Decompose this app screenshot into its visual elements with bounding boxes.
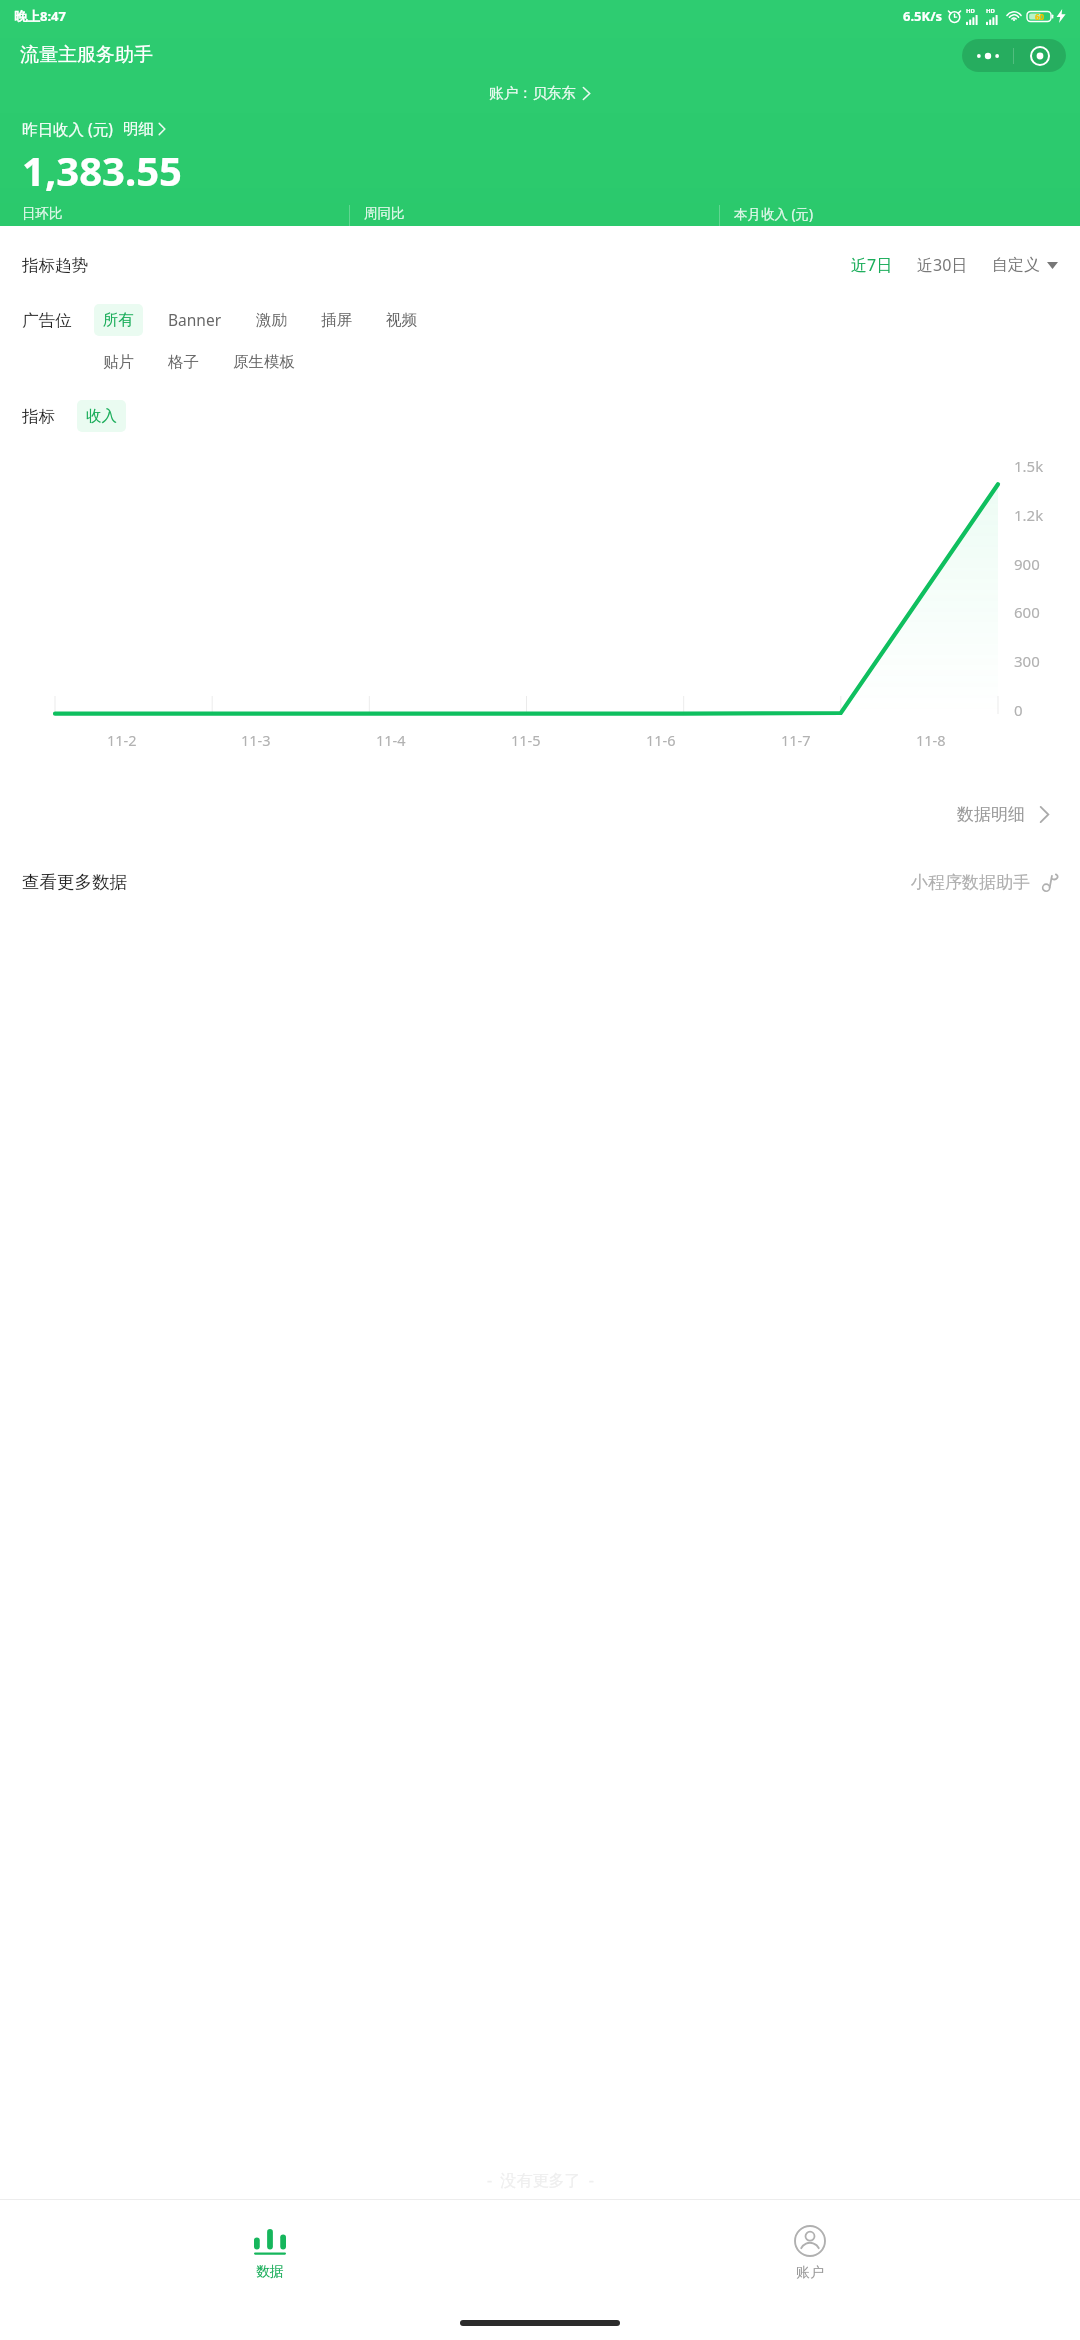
button[interactable]: 昨日收入 (元): [22, 118, 166, 139]
staticText: 账户：贝东东: [489, 84, 576, 102]
button[interactable]: 所有: [94, 304, 143, 336]
staticText: 日环比: [22, 205, 63, 222]
staticText: - 没有更多了 -: [487, 2169, 594, 2191]
staticText: 指标: [22, 406, 55, 427]
button[interactable]: 小程序数据助手: [911, 872, 1058, 893]
staticText: 原生模板: [233, 352, 295, 372]
button[interactable]: 插屏: [312, 304, 361, 336]
button[interactable]: Banner: [159, 303, 231, 336]
button[interactable]: 自定义: [992, 255, 1058, 275]
staticText: 1.5k: [1014, 456, 1044, 476]
staticText: 视频: [386, 310, 417, 330]
staticText: 周同比: [364, 205, 405, 222]
staticText: 1.2k: [1014, 505, 1044, 525]
staticText: 1,383.55: [22, 143, 182, 197]
staticText: 11-2: [107, 730, 137, 750]
staticText: 6.5K/s: [903, 7, 943, 25]
staticText: 指标趋势: [22, 255, 88, 276]
staticText: 近7日: [851, 254, 893, 276]
staticText: 11-6: [646, 730, 676, 750]
staticText: 数据明细: [957, 804, 1025, 825]
button[interactable]: 激励: [247, 304, 296, 336]
staticText: 11-3: [241, 730, 271, 750]
button[interactable]: 贴片: [94, 346, 143, 378]
button[interactable]: 数据: [0, 2200, 540, 2306]
staticText: 广告位: [22, 310, 72, 331]
button[interactable]: 账户：贝东东: [0, 78, 1080, 108]
staticText: 自定义: [992, 255, 1040, 275]
button[interactable]: 更多: [962, 39, 1013, 72]
staticText: 近30日: [917, 254, 968, 276]
staticText: 0: [1014, 700, 1023, 720]
staticText: 本月收入 (元): [734, 205, 814, 223]
staticText: 格子: [168, 352, 199, 372]
staticText: HD: [986, 7, 995, 15]
staticText: HD: [966, 7, 975, 15]
staticText: 插屏: [321, 310, 352, 330]
button[interactable]: 原生模板: [224, 346, 304, 378]
staticText: 收入: [86, 406, 117, 426]
staticText: 账户: [796, 2264, 824, 2282]
button[interactable]: 账户: [540, 2200, 1080, 2306]
staticText: 300: [1014, 651, 1040, 671]
button[interactable]: 关闭: [1014, 39, 1066, 72]
staticText: 11-4: [376, 730, 406, 750]
staticText: 小程序数据助手: [911, 872, 1030, 893]
button[interactable]: 近30日: [917, 254, 968, 276]
staticText: 900: [1014, 554, 1040, 574]
button[interactable]: 数据明细: [951, 798, 1056, 831]
staticText: Banner: [168, 309, 222, 330]
staticText: 查看更多数据: [22, 871, 127, 893]
staticText: 昨日收入 (元): [22, 118, 113, 139]
staticText: 流量主服务助手: [20, 43, 153, 67]
staticText: 11-8: [916, 730, 946, 750]
button[interactable]: 视频: [377, 304, 426, 336]
staticText: 60: [1035, 11, 1045, 22]
staticText: 数据: [256, 2263, 284, 2281]
staticText: 晚上8:47: [14, 7, 66, 25]
staticText: 明细: [123, 119, 154, 139]
staticText: 贴片: [103, 352, 134, 372]
staticText: 所有: [103, 310, 134, 330]
button[interactable]: 格子: [159, 346, 208, 378]
staticText: 11-5: [511, 730, 541, 750]
button[interactable]: 近7日: [851, 254, 893, 276]
staticText: 激励: [256, 310, 287, 330]
staticText: 600: [1014, 602, 1040, 622]
staticText: 11-7: [781, 730, 811, 750]
button[interactable]: 收入: [77, 400, 126, 432]
